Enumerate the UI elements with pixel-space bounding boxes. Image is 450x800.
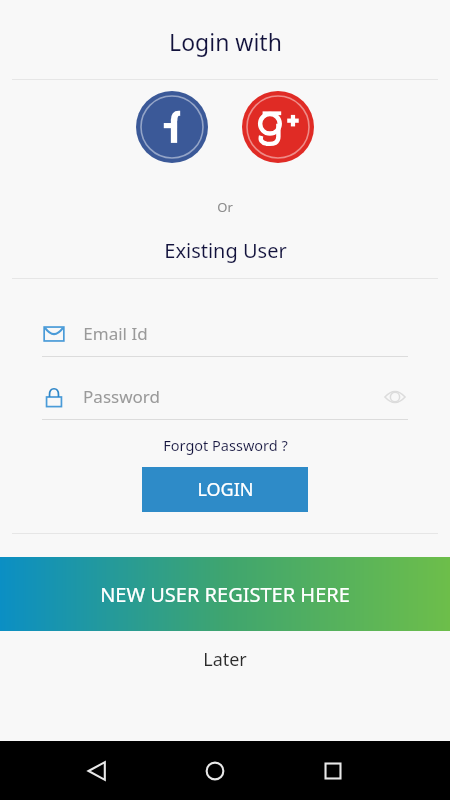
staticText: Email Id [83, 322, 148, 345]
button[interactable]: NEW USER REGISTER HERE [0, 557, 450, 631]
button[interactable]: Recent apps [311, 749, 355, 793]
button[interactable]: Back [75, 749, 119, 793]
staticText: Login with [169, 26, 282, 57]
button[interactable]: Show password [382, 384, 408, 410]
staticText: Forgot Password ? [163, 435, 288, 455]
button[interactable]: Later [193, 643, 257, 676]
staticText: Or [217, 198, 233, 216]
button[interactable]: Login with Google Plus [242, 91, 314, 163]
button[interactable]: Email Id [42, 311, 408, 357]
staticText: Existing User [164, 237, 287, 264]
staticText: LOGIN [197, 477, 254, 502]
staticText: Password [83, 385, 160, 408]
button[interactable]: LOGIN [142, 467, 308, 512]
staticText: Later [203, 647, 247, 672]
button[interactable]: Forgot Password ? [157, 433, 294, 457]
button[interactable]: Login with Facebook [136, 91, 208, 163]
staticText: NEW USER REGISTER HERE [100, 581, 350, 608]
button[interactable]: Password [42, 374, 408, 420]
button[interactable]: Home [193, 749, 237, 793]
